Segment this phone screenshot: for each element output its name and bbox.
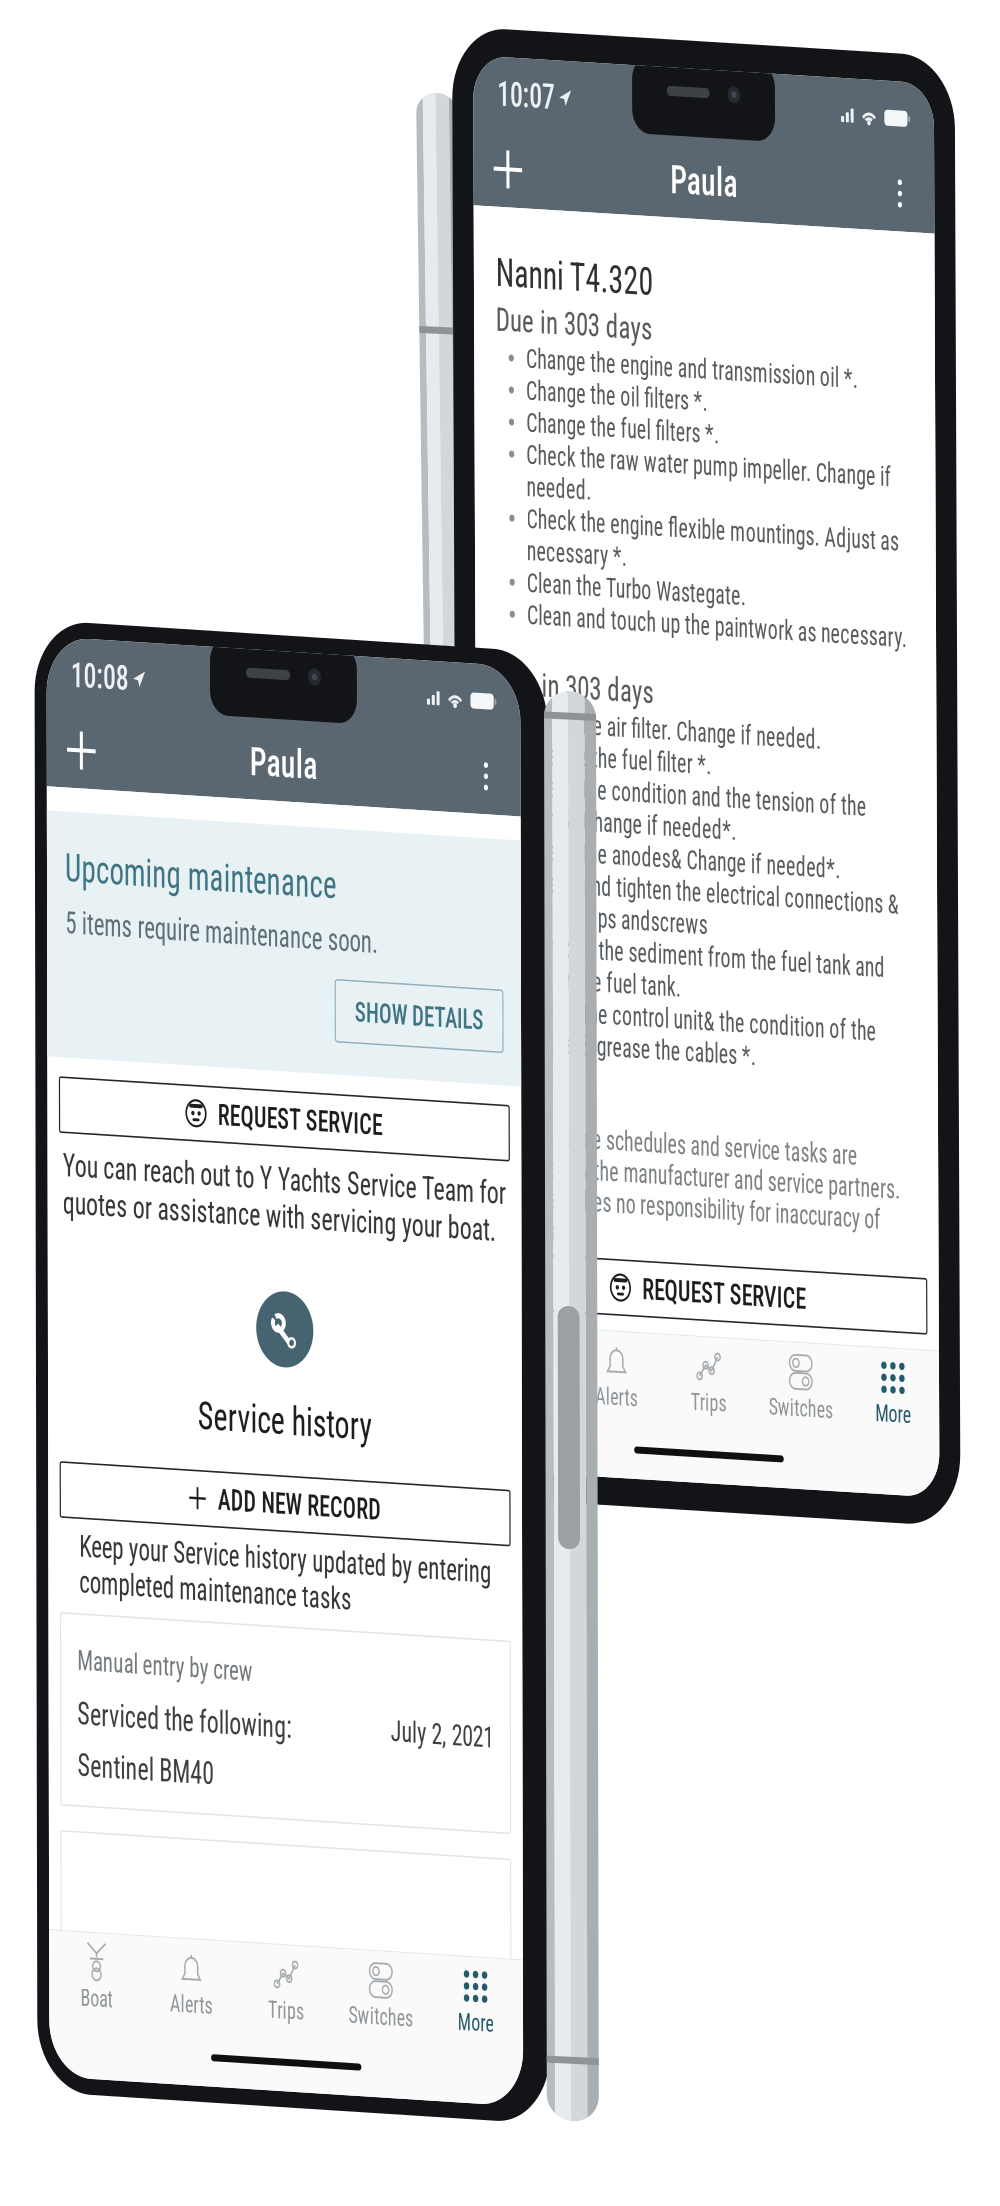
button[interactable]: Trips bbox=[274, 1298, 398, 1382]
button[interactable]: More options bbox=[560, 102, 636, 178]
staticText: Change the engine and transmission oil *… bbox=[97, 312, 541, 344]
staticText: REQUEST SERVICE bbox=[232, 466, 451, 501]
button[interactable]: More bbox=[521, 1298, 644, 1382]
staticText: More bbox=[558, 1347, 606, 1375]
staticText: Service history bbox=[205, 762, 437, 809]
staticText: Check the engine flexible mountings. Adj… bbox=[97, 472, 595, 536]
button[interactable]: Boat bbox=[28, 1298, 151, 1382]
staticText: ADD NEW RECORD bbox=[231, 851, 448, 886]
button[interactable]: SHOW DETAILS bbox=[389, 341, 612, 403]
staticText: Manual entry by crew bbox=[44, 1022, 277, 1055]
staticText: Check and tighten the electrical connect… bbox=[97, 835, 593, 899]
staticText: More bbox=[549, 1361, 597, 1389]
button[interactable]: More bbox=[510, 1312, 636, 1396]
staticText: REQUEST SERVICE bbox=[247, 1234, 466, 1269]
staticText: Keep your Service history updated by ent… bbox=[47, 906, 595, 978]
button[interactable]: Alerts bbox=[132, 1312, 258, 1396]
staticText: Due in 303 days bbox=[57, 634, 266, 673]
staticText: You can reach out to Y Yachts Service Te… bbox=[26, 525, 616, 600]
staticText: Sentinel BM40 bbox=[44, 1124, 226, 1162]
staticText: SHOW DETAILS bbox=[415, 356, 586, 388]
button[interactable]: Alerts bbox=[151, 1298, 274, 1382]
button[interactable]: More options bbox=[552, 90, 628, 166]
staticText: Clean the air filter. Change if needed. bbox=[97, 675, 490, 707]
staticText: Serviced the following: bbox=[44, 1073, 329, 1110]
staticText: Maintenance schedules and service tasks … bbox=[57, 1090, 593, 1215]
staticText: Change the fuel filter *. bbox=[97, 707, 343, 739]
staticText: 5 items require maintenance soon. bbox=[30, 283, 446, 319]
staticText: Remove the sediment from the fuel tank a… bbox=[97, 899, 574, 964]
staticText: Check the condition and the tension of t… bbox=[97, 739, 550, 803]
button[interactable]: ADD NEW RECORD bbox=[22, 841, 620, 896]
button[interactable]: Trips bbox=[258, 1312, 384, 1396]
staticText: Clean and touch up the paintwork as nece… bbox=[97, 568, 605, 600]
staticText: Check the raw water pump impeller. Chang… bbox=[97, 408, 585, 472]
button[interactable]: Boat bbox=[6, 1312, 132, 1396]
button[interactable]: REQUEST SERVICE bbox=[44, 1224, 628, 1279]
button[interactable]: REQUEST SERVICE bbox=[22, 456, 620, 511]
staticText: July 2, 2021 bbox=[461, 1072, 598, 1106]
staticText: Check the control unit& the condition of… bbox=[97, 963, 562, 1028]
staticText: Check the anodes& Change if needed*. bbox=[97, 803, 515, 835]
staticText: Trips bbox=[297, 1361, 345, 1389]
